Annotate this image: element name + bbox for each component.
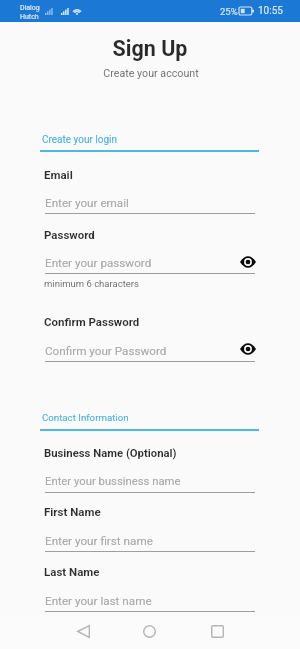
staticText: First Name xyxy=(44,505,101,518)
button[interactable]: Recent apps xyxy=(195,617,239,649)
button[interactable]: Enter your last name xyxy=(45,594,255,611)
staticText: Sign Up xyxy=(0,36,300,61)
staticText: Create your login xyxy=(42,134,118,146)
button[interactable]: Confirm your Password xyxy=(45,344,255,361)
staticText: Enter your last name xyxy=(45,594,152,608)
button[interactable]: Enter your email xyxy=(45,196,255,213)
staticText: 10:55 xyxy=(258,5,283,17)
staticText: Last Name xyxy=(44,565,100,578)
staticText: Password xyxy=(44,228,95,241)
staticText: Business Name (Optional) xyxy=(44,447,177,460)
staticText: Create your account xyxy=(1,67,300,80)
button[interactable]: Enter your password xyxy=(45,256,255,273)
button[interactable]: Enter your first name xyxy=(45,534,255,551)
button[interactable]: Show confirm password xyxy=(240,343,256,355)
staticText: Enter your password xyxy=(45,256,152,270)
button[interactable]: Home xyxy=(128,617,172,649)
staticText: Enter your bussiness name xyxy=(45,475,181,488)
staticText: Confirm your Password xyxy=(45,344,167,358)
button[interactable]: Show password xyxy=(240,256,256,268)
button[interactable]: Enter your bussiness name xyxy=(45,475,255,492)
staticText: Enter your email xyxy=(45,196,129,210)
button[interactable]: Back xyxy=(61,617,105,649)
staticText: Contact Information xyxy=(42,412,129,423)
staticText: Confirm Password xyxy=(44,315,140,328)
staticText: Hutch xyxy=(20,13,39,21)
staticText: minimum 6 characters xyxy=(44,278,139,289)
staticText: Enter your first name xyxy=(45,534,153,548)
staticText: 25% xyxy=(220,6,238,17)
staticText: Email xyxy=(44,168,73,181)
staticText: Dialog xyxy=(20,4,40,12)
